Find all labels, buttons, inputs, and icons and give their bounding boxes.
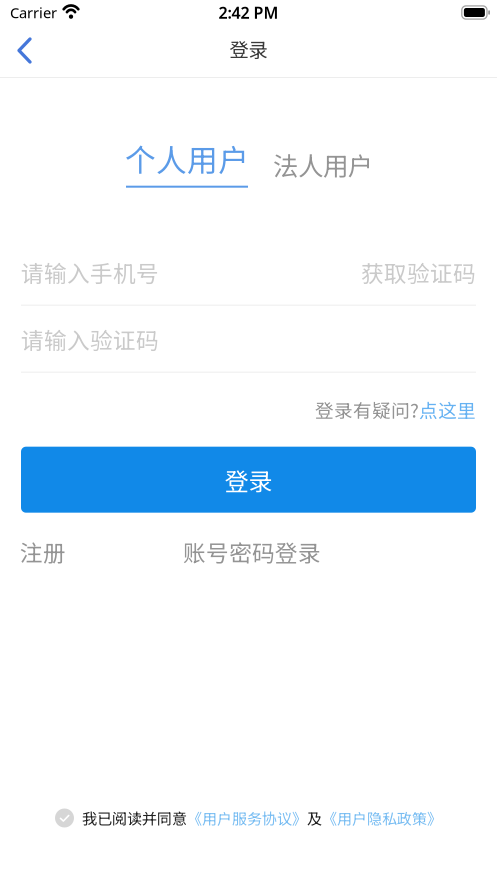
button[interactable]: Back [0,25,46,78]
staticText: 及 [307,807,322,829]
staticText: 登录 [224,462,272,497]
button[interactable]: 获取验证码 [361,256,476,289]
staticText: 《用户隐私政策》 [322,807,442,829]
staticText: 请输入手机号 [21,256,159,289]
button[interactable]: 个人用户 [126,136,248,188]
staticText: 请输入验证码 [21,323,159,356]
button[interactable]: 账号密码登录 [183,535,321,568]
staticText: 法人用户 [273,146,373,183]
staticText: Carrier [10,3,57,22]
staticText: 注册 [20,535,66,568]
staticText: 获取验证码 [361,256,476,289]
button[interactable]: 点这里 [419,396,476,423]
button[interactable]: 《用户隐私政策》 [322,807,442,829]
staticText: 个人用户 [125,136,249,181]
button[interactable]: 注册 [20,535,66,568]
button[interactable]: 登录 [21,447,476,513]
button[interactable]: 法人用户 [274,136,372,188]
button[interactable]: Agree to terms [55,808,74,827]
button[interactable]: 《用户服务协议》 [187,807,307,829]
staticText: 2:42 PM [218,2,278,23]
staticText: 《用户服务协议》 [187,807,307,829]
staticText: 登录 [229,34,267,62]
staticText: 账号密码登录 [183,535,321,568]
staticText: 我已阅读并同意 [82,807,187,829]
staticText: 登录有疑问? [315,396,419,423]
staticText: 点这里 [419,396,476,423]
